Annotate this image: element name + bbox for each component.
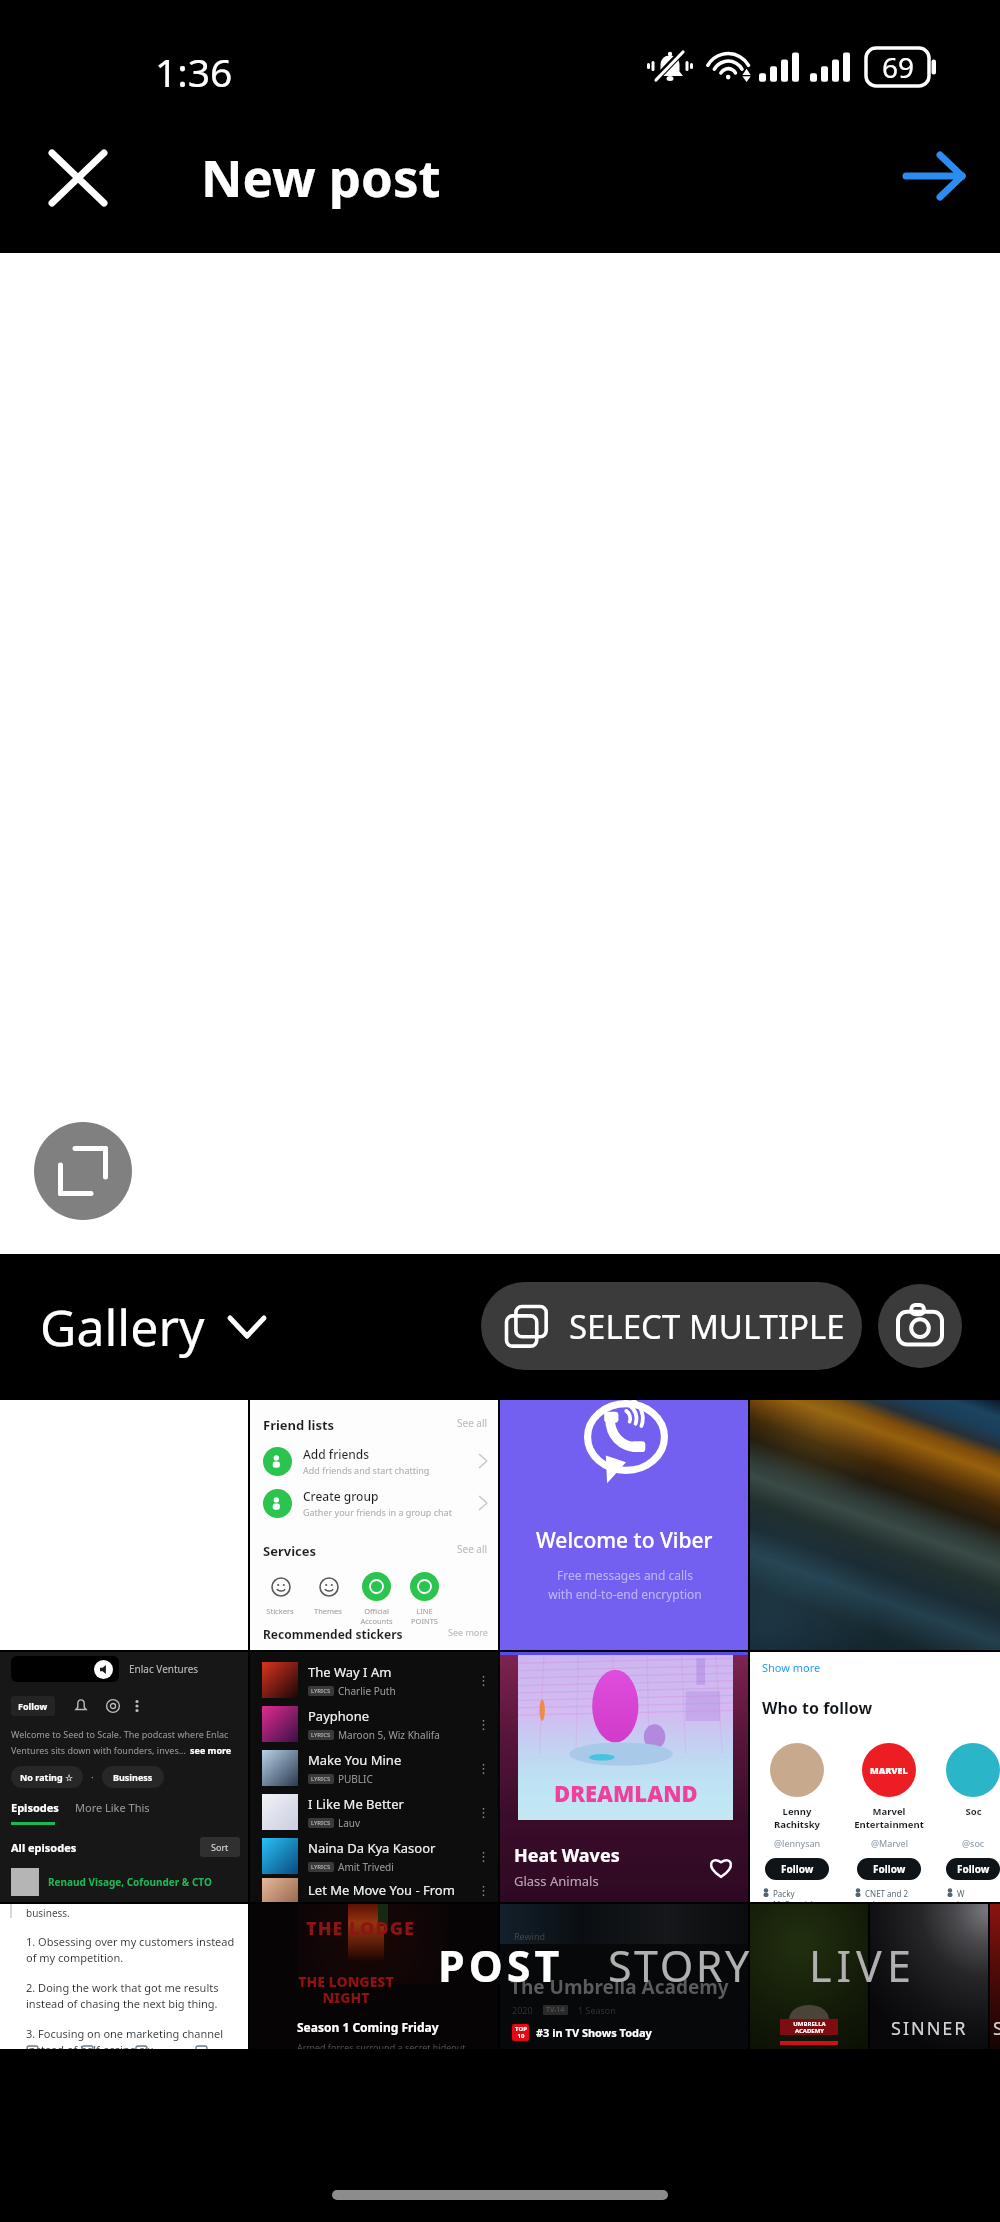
button[interactable]: STORY — [596, 1922, 764, 2009]
button[interactable]: The Way I Am — [250, 1652, 498, 1902]
staticText: PUBLIC — [338, 1772, 373, 1786]
button[interactable]: Rewind — [500, 1904, 748, 2049]
staticText: Enlac Ventures — [129, 1662, 199, 1676]
staticText: Stickers — [266, 1606, 294, 1616]
staticText: Who to follow — [762, 1697, 873, 1719]
staticText: Services — [263, 1542, 317, 1560]
button[interactable]: Follow — [765, 1858, 829, 1880]
staticText: See all — [457, 1416, 488, 1430]
staticText: ⋮ — [477, 1883, 490, 1898]
staticText: LYRICS — [311, 1863, 331, 1871]
staticText: Welcome to Seed to Scale. The podcast wh… — [11, 1728, 229, 1740]
staticText: THE LONGEST NIGHT — [298, 1972, 394, 2007]
staticText: 2020 — [512, 2004, 533, 2016]
button[interactable]: Show more — [750, 1652, 1000, 1902]
staticText: Free messages and calls with end-to-end … — [548, 1567, 702, 1602]
staticText: All episodes — [11, 1840, 77, 1855]
staticText: Season 1 Coming Friday — [297, 2019, 439, 2035]
staticText: Packy McCormick and 13 others — [773, 1888, 832, 1902]
button[interactable]: Close — [24, 124, 132, 232]
staticText: LYRICS — [311, 1731, 331, 1739]
button[interactable]: Gallery — [40, 1293, 279, 1361]
staticText: LYRICS — [311, 1819, 331, 1827]
staticText: business. — [26, 1906, 70, 1920]
staticText: No rating ☆ — [20, 1771, 74, 1783]
button[interactable]: POST — [426, 1922, 576, 2009]
staticText: TOP 10 — [515, 2025, 527, 2040]
staticText: Recommended stickers — [263, 1626, 403, 1642]
staticText: Welcome to Viber — [536, 1526, 713, 1555]
staticText: LINE POINTS — [411, 1606, 438, 1626]
staticText: See all — [457, 1542, 488, 1556]
staticText: Charlie Puth — [338, 1684, 396, 1698]
staticText: Payphone — [308, 1707, 370, 1725]
staticText: SINNER — [891, 2016, 968, 2041]
staticText: I Like Me Better — [308, 1795, 404, 1813]
button[interactable]: Next — [880, 122, 988, 230]
staticText: 1. Obsessing over my customers instead o… — [26, 1934, 235, 1966]
button[interactable] — [750, 1400, 1000, 1650]
button[interactable]: Welcome to Viber — [500, 1400, 748, 1650]
staticText: Sort — [211, 1841, 229, 1853]
staticText: New post — [201, 142, 441, 211]
staticText: Episodes — [11, 1800, 59, 1815]
staticText: Add friends — [303, 1446, 370, 1462]
staticText: Business — [113, 1771, 153, 1783]
staticText: 1 Season — [578, 2004, 616, 2016]
button[interactable]: DREAMLAND — [500, 1652, 748, 1902]
staticText: Amit Trivedi — [338, 1860, 394, 1874]
button[interactable]: SELECT MULTIPLE — [481, 1282, 862, 1370]
staticText: ⋮ — [477, 1849, 490, 1864]
staticText: Lauv — [338, 1816, 361, 1830]
staticText: Follow — [873, 1862, 906, 1876]
staticText: LYRICS — [311, 1775, 331, 1783]
button[interactable]: UMBRELLA ACADEMY — [750, 1904, 1000, 2049]
staticText: Gallery — [40, 1293, 205, 1361]
staticText: · — [91, 1770, 94, 1784]
staticText: Add friends and start chatting — [303, 1464, 430, 1476]
staticText: 1:36 — [155, 45, 233, 98]
staticText: ⋮ — [477, 1805, 490, 1820]
button[interactable]: THE LODGE — [250, 1904, 498, 2049]
staticText: Themes — [314, 1606, 342, 1616]
button[interactable]: Expand — [34, 1122, 132, 1220]
staticText: MARVEL — [870, 1764, 908, 1776]
button[interactable]: business. — [0, 1904, 248, 2049]
staticText: W bu — [957, 1888, 967, 1902]
staticText: THE LODGE — [306, 1916, 415, 1941]
staticText: Friend lists — [263, 1416, 335, 1434]
button[interactable]: Follow — [946, 1858, 1000, 1880]
staticText: DREAMLAND — [554, 1778, 698, 1808]
staticText: Official Accounts — [360, 1606, 393, 1626]
staticText: Show more — [762, 1660, 821, 1675]
button[interactable]: Enlac Ventures — [0, 1652, 248, 1902]
staticText: Create group — [303, 1488, 379, 1504]
button[interactable]: Friend lists — [250, 1400, 498, 1650]
staticText: Ventures sits down with founders, inves.… — [11, 1744, 186, 1756]
staticText: The Umbrella Academy — [510, 1974, 729, 2000]
staticText: Follow — [957, 1862, 990, 1876]
staticText: @soc — [962, 1837, 985, 1849]
staticText: Glass Animals — [514, 1872, 599, 1890]
button[interactable]: LIVE — [797, 1922, 928, 2009]
staticText: 3. Focusing on one marketing channel ins… — [26, 2026, 224, 2049]
staticText: S — [993, 2016, 1000, 2041]
staticText: see more — [190, 1744, 232, 1756]
button[interactable]: Follow — [857, 1858, 921, 1880]
button[interactable]: Camera — [878, 1284, 962, 1368]
staticText: The Way I Am — [308, 1663, 392, 1681]
staticText: Follow — [18, 1700, 48, 1712]
staticText: Maroon 5, Wiz Khalifa — [338, 1728, 440, 1742]
staticText: @Marvel — [871, 1837, 908, 1849]
staticText: Follow — [781, 1862, 814, 1876]
staticText: Make You Mine — [308, 1751, 402, 1769]
staticText: Naina Da Kya Kasoor — [308, 1839, 436, 1857]
staticText: 2. Doing the work that got me results in… — [26, 1980, 219, 2012]
staticText: ⋮ — [477, 1717, 490, 1732]
staticText: Soc — [965, 1805, 982, 1818]
staticText: LYRICS — [311, 1687, 331, 1695]
staticText: See more — [448, 1626, 488, 1638]
staticText: Rewind — [514, 1930, 545, 1942]
staticText: #3 in TV Shows Today — [536, 2025, 652, 2040]
